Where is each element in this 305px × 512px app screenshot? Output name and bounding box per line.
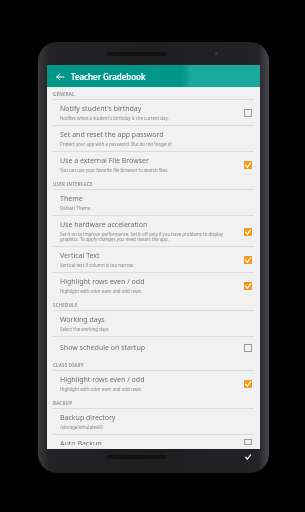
staticText: Theme [60, 194, 83, 204]
staticText: GENERAL [53, 91, 75, 97]
staticText: Notify student's birthday [60, 104, 142, 114]
button[interactable]: Highlight rows even / odd [47, 273, 260, 298]
staticText: /storage/emulated/0 [60, 424, 103, 430]
staticText: Working days [60, 315, 105, 325]
staticText: BACKUP [53, 400, 73, 406]
button[interactable]: Set and reset the app password [47, 126, 260, 152]
staticText: USER INTERFACE [53, 181, 93, 187]
staticText: You can use your favorite file browser t… [60, 167, 169, 173]
staticText: Vertical Text [60, 251, 100, 261]
button[interactable]: Auto Backup [47, 435, 260, 449]
button[interactable]: Back [52, 69, 67, 84]
staticText: Notifies when a student's birthday is th… [60, 115, 169, 121]
button[interactable]: Working days [47, 311, 260, 337]
staticText: Highlight with color even and odd rows. [60, 288, 142, 294]
button[interactable]: Theme [47, 190, 260, 216]
button[interactable]: Use a external File Browser [47, 152, 260, 177]
button[interactable]: Highlight rows even / odd [47, 371, 260, 396]
button[interactable]: Backup directory [47, 409, 260, 435]
staticText: Use a external File Browser [60, 156, 149, 166]
staticText: Backup directory [60, 413, 116, 423]
button[interactable]: Vertical Text [47, 247, 260, 273]
staticText: Select the working days [60, 326, 109, 332]
button[interactable]: Notify student's birthday [47, 100, 260, 126]
staticText: Set and reset the app password [60, 130, 164, 140]
staticText: Use hardware acceleration [60, 220, 148, 230]
staticText: Highlight rows even / odd [60, 375, 145, 385]
staticText: Highlight rows even / odd [60, 277, 145, 287]
staticText: Teacher Gradebook [71, 71, 146, 82]
staticText: Default Theme [60, 205, 91, 211]
staticText: Highlight with color even and odd rows. [60, 386, 142, 392]
staticText: CLASS DIARY [53, 362, 84, 368]
button[interactable]: Show schedule on startup [47, 337, 260, 358]
button[interactable]: Use hardware acceleration [47, 216, 260, 247]
staticText: Show schedule on startup [60, 343, 146, 353]
staticText: Set it on to improve performance. Set it… [60, 231, 237, 242]
staticText: Vertical text if column is too narrow. [60, 262, 134, 268]
staticText: SCHEDULE [53, 302, 78, 308]
staticText: Protect your app with a password. But do… [60, 141, 172, 147]
staticText: Auto Backup [60, 439, 102, 445]
